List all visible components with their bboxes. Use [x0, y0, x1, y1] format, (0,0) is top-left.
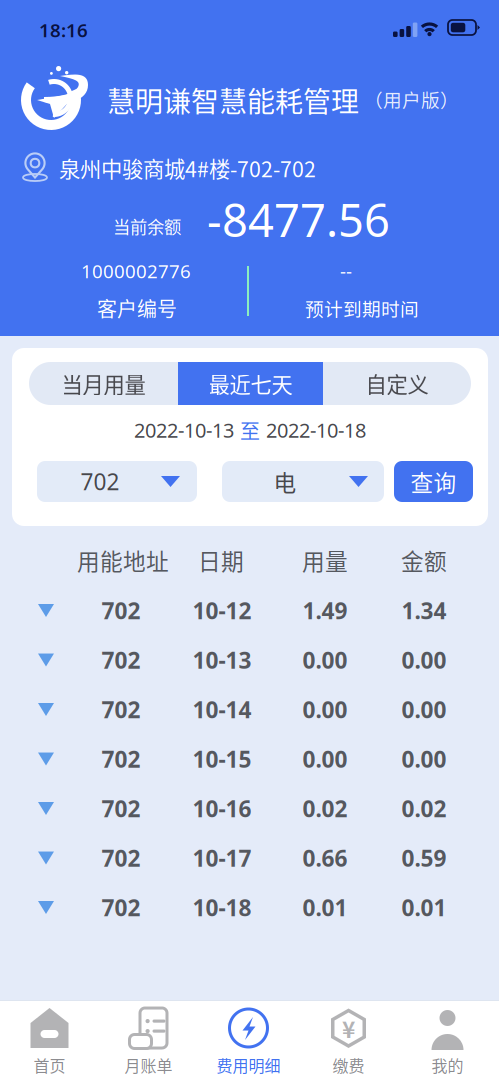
staticText: 泉州中骏商城4#楼-702-702	[59, 153, 316, 183]
staticText: 0.66	[302, 843, 347, 873]
staticText: 0.02	[401, 793, 446, 823]
staticText: 缴费	[332, 1053, 364, 1077]
staticText: 2022-10-18	[266, 417, 366, 443]
staticText: 0.02	[302, 793, 347, 823]
staticText: 1000002776	[81, 259, 191, 283]
staticText: 至	[240, 415, 260, 444]
staticText: 用量	[302, 544, 348, 576]
staticText: 2022-10-13	[134, 417, 234, 443]
staticText: 金额	[401, 544, 447, 576]
staticText: 0.01	[302, 892, 347, 922]
staticText: 0.59	[401, 843, 446, 873]
staticText: 首页	[33, 1053, 65, 1077]
staticText: 日期	[198, 544, 244, 576]
staticText: 自定义	[365, 368, 428, 399]
staticText: 0.00	[302, 694, 347, 724]
button[interactable]: 查询	[394, 461, 473, 502]
staticText: 0.00	[302, 645, 347, 675]
staticText: 18:16	[39, 18, 88, 42]
staticText: 0.00	[401, 744, 446, 774]
staticText: 10-15	[192, 744, 251, 774]
staticText: 当月用量	[61, 368, 145, 399]
staticText: 0.01	[401, 892, 446, 922]
staticText: 10-12	[192, 595, 251, 625]
staticText: 客户编号	[97, 293, 177, 322]
staticText: 10-18	[192, 892, 251, 922]
staticText: 10-17	[192, 843, 251, 873]
staticText: 702	[101, 595, 140, 625]
button[interactable]: 月账单	[99, 1000, 198, 1080]
staticText: 预计到期时间	[305, 294, 419, 321]
staticText: 0.00	[401, 694, 446, 724]
button[interactable]: 当月用量	[29, 362, 178, 405]
button[interactable]: 我的	[398, 1000, 497, 1080]
staticText: 702	[101, 744, 140, 774]
button[interactable]: 自定义	[323, 362, 471, 405]
staticText: 用能地址	[77, 544, 169, 576]
staticText: 0.00	[302, 744, 347, 774]
staticText: 1.34	[401, 595, 446, 625]
staticText: 1.49	[302, 595, 347, 625]
staticText: 慧明谦智慧能耗管理	[107, 80, 359, 120]
staticText: 702	[80, 466, 119, 496]
staticText: （用户版）	[364, 85, 459, 112]
staticText: 费用明细	[216, 1053, 280, 1077]
staticText: 702	[101, 645, 140, 675]
button[interactable]: 702	[37, 461, 197, 502]
staticText: 702	[101, 843, 140, 873]
staticText: 10-13	[192, 645, 251, 675]
staticText: -8477.56	[207, 189, 390, 250]
staticText: 月账单	[124, 1053, 172, 1077]
staticText: 10-14	[192, 694, 251, 724]
staticText: 我的	[431, 1053, 463, 1077]
button[interactable]: 首页	[0, 1000, 99, 1080]
button[interactable]: 最近七天	[178, 362, 323, 405]
button[interactable]: 费用明细	[198, 1000, 299, 1080]
staticText: 702	[101, 793, 140, 823]
button[interactable]: ¥	[299, 1000, 398, 1080]
staticText: 702	[101, 694, 140, 724]
staticText: 查询	[410, 465, 456, 498]
staticText: 当前余额	[113, 213, 181, 239]
staticText: --	[340, 259, 352, 283]
staticText: 最近七天	[208, 368, 292, 399]
button[interactable]: 电	[222, 461, 384, 502]
staticText: 10-16	[192, 793, 251, 823]
staticText: ¥	[342, 1012, 355, 1044]
staticText: 702	[101, 892, 140, 922]
staticText: 0.00	[401, 645, 446, 675]
staticText: 电	[273, 465, 296, 498]
